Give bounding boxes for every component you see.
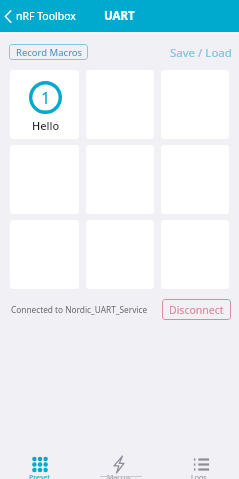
button[interactable]: Macros <box>79 456 159 479</box>
staticText: Record Macros <box>16 46 83 59</box>
staticText: 1 <box>41 87 51 109</box>
button[interactable]: Preset <box>0 456 79 479</box>
staticText: UART <box>104 8 135 24</box>
button[interactable]: Logs <box>159 456 239 479</box>
staticText: nRF Toolbox <box>16 9 76 23</box>
button[interactable]: Record Macros <box>9 44 88 60</box>
other: Preset <box>31 456 49 473</box>
staticText: Save / Load <box>170 45 232 61</box>
button[interactable]: Save / Load <box>161 41 239 65</box>
staticText: Logs <box>191 473 207 479</box>
button[interactable]: Disconnect <box>162 299 231 320</box>
button[interactable]: nRF Toolbox <box>0 9 80 23</box>
staticText: Connected to Nordic_UART_Service <box>11 304 148 315</box>
other: Macros <box>110 456 128 473</box>
staticText: Hello <box>32 118 60 133</box>
button[interactable]: 1 <box>10 70 79 139</box>
other: Logs <box>190 456 208 473</box>
staticText: Preset <box>29 473 50 479</box>
staticText: Disconnect <box>169 303 224 317</box>
staticText: Macros <box>107 473 131 479</box>
